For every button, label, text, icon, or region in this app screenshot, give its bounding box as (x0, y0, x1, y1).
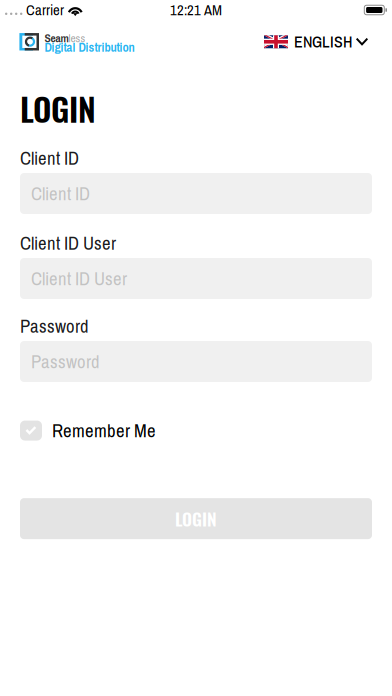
staticText: Digital Distribution (45, 39, 135, 56)
staticText: Carrier (26, 0, 64, 20)
staticText: Remember Me (52, 418, 156, 443)
staticText: 12:21 AM (170, 0, 222, 20)
button[interactable]: Remember Me (20, 418, 372, 443)
staticText: Client ID User (20, 230, 116, 255)
staticText: Seam (45, 30, 69, 46)
staticText: less (69, 30, 86, 46)
button[interactable]: Seam (19, 33, 135, 50)
staticText: Client ID (20, 145, 79, 170)
staticText: ENGLISH (294, 31, 352, 53)
staticText: Client ID (31, 181, 90, 206)
staticText: Password (31, 349, 100, 374)
staticText: Password (20, 313, 89, 338)
button[interactable]: ENGLISH (264, 31, 368, 53)
staticText: Client ID User (31, 266, 127, 291)
staticText: LOGIN (175, 506, 217, 531)
staticText: LOGIN (20, 85, 96, 132)
button[interactable]: LOGIN (20, 498, 372, 539)
